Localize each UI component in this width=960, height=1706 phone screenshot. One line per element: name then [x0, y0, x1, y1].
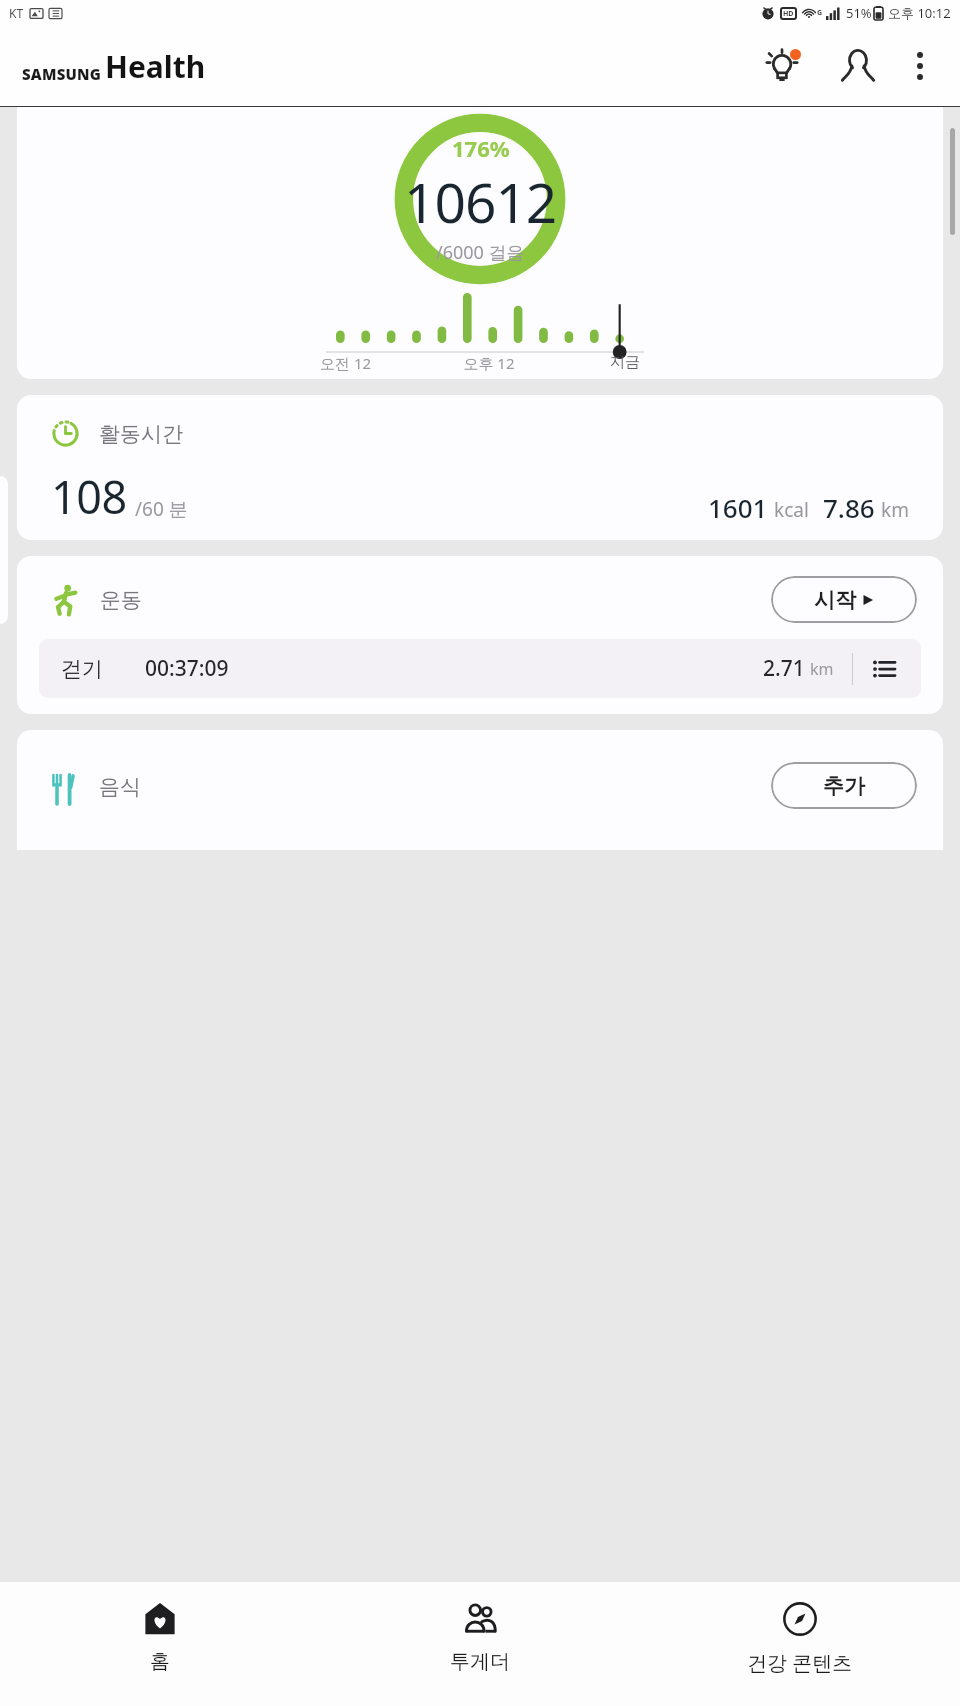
- staticText: 오후 12: [433, 353, 545, 373]
- staticText: 걷기: [61, 656, 103, 682]
- staticText: 시작: [814, 587, 856, 613]
- staticText: 10612: [404, 164, 557, 239]
- staticText: 7.86: [823, 490, 875, 525]
- staticText: 음식: [99, 774, 141, 800]
- button[interactable]: 추가: [771, 762, 917, 809]
- staticText: 2.71: [763, 654, 805, 683]
- staticText: /60 분: [135, 496, 188, 522]
- staticText: kcal: [774, 497, 809, 523]
- button[interactable]: 활동시간: [17, 395, 943, 540]
- staticText: HD: [783, 9, 794, 19]
- button[interactable]: 걷기: [39, 639, 921, 698]
- staticText: 추가: [823, 773, 865, 799]
- staticText: Health: [105, 46, 206, 87]
- button[interactable]: 음식: [17, 730, 943, 850]
- button[interactable]: Profile: [832, 40, 884, 92]
- staticText: 운동: [100, 587, 142, 613]
- staticText: 00:37:09: [145, 654, 229, 683]
- staticText: 홈: [150, 1649, 170, 1674]
- button[interactable]: 건강 콘텐츠: [640, 1582, 960, 1706]
- button[interactable]: 176%: [17, 107, 943, 379]
- staticText: SAMSUNG: [22, 64, 102, 84]
- staticText: km: [810, 658, 834, 680]
- staticText: 투게더: [450, 1649, 510, 1674]
- staticText: 오후 10:12: [888, 4, 951, 22]
- staticText: 건강 콘텐츠: [747, 1649, 853, 1676]
- staticText: 1601: [708, 490, 768, 525]
- staticText: G: [817, 8, 823, 18]
- button[interactable]: Details list: [869, 654, 899, 684]
- staticText: 활동시간: [99, 421, 183, 447]
- button[interactable]: 홈: [0, 1582, 320, 1706]
- staticText: km: [881, 497, 909, 523]
- staticText: 108: [51, 466, 127, 527]
- button[interactable]: More options: [898, 44, 942, 88]
- staticText: 오전 12: [320, 353, 433, 373]
- button[interactable]: 투게더: [320, 1582, 640, 1706]
- staticText: /6000 걸음: [436, 240, 525, 265]
- staticText: KT: [9, 5, 24, 21]
- staticText: 지금: [545, 353, 640, 372]
- staticText: 176%: [452, 133, 510, 163]
- staticText: 51%: [846, 4, 872, 22]
- button[interactable]: 시작: [771, 576, 917, 623]
- button[interactable]: Tips: [754, 38, 810, 94]
